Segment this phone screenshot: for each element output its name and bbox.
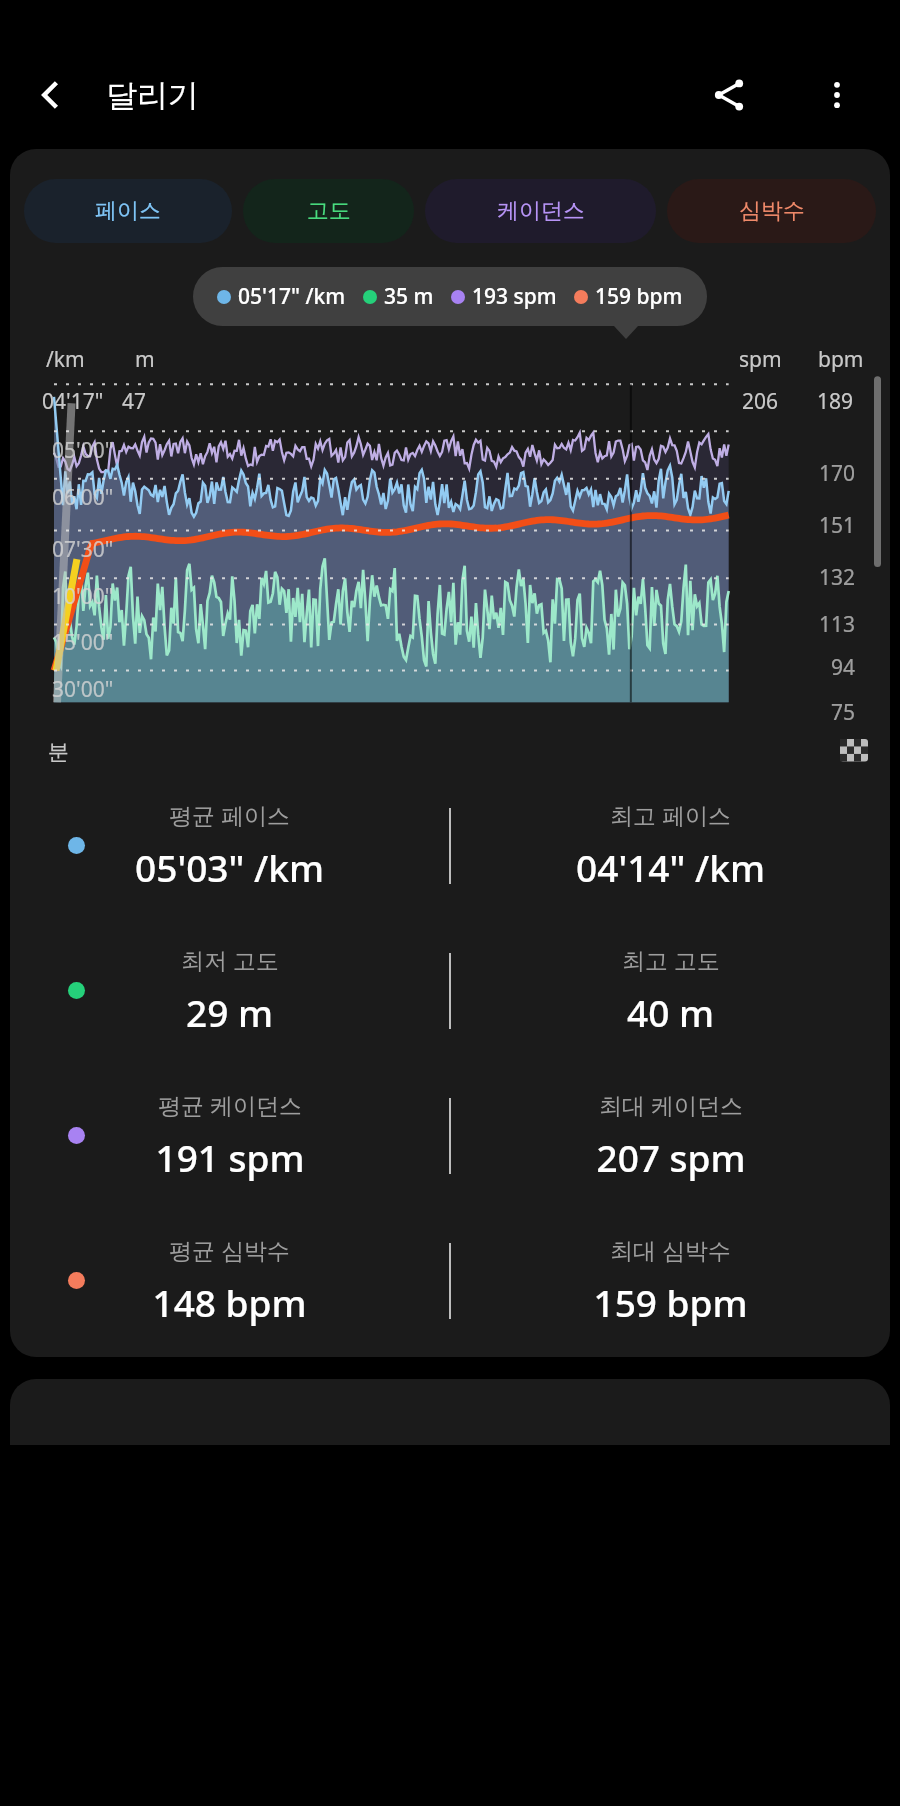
staticText: 15'00" [52,628,114,657]
staticText: 113 [819,610,856,639]
staticText: 94 [831,653,856,682]
staticText: 148 bpm [152,1277,307,1327]
button[interactable]: Share [698,64,760,126]
staticText: 분 [48,739,69,765]
staticText: 04'14" /km [576,842,765,892]
button[interactable]: More options [806,64,868,126]
staticText: 193 spm [472,282,557,311]
staticText: 10'00" [52,582,114,611]
staticText: 페이스 [95,197,161,225]
staticText: 최고 페이스 [610,799,731,830]
staticText: 고도 [307,197,351,225]
staticText: 75 [831,698,856,727]
staticText: 평균 케이던스 [158,1089,302,1120]
staticText: 132 [819,563,856,592]
staticText: 191 spm [155,1132,305,1182]
button[interactable]: 평균 케이던스 [10,1089,890,1182]
staticText: 05'00" [52,436,114,465]
staticText: spm [739,345,782,374]
staticText: 151 [819,511,856,540]
staticText: 170 [819,459,856,488]
button[interactable]: 평균 페이스 [10,799,890,892]
staticText: 04'17" [42,387,104,416]
staticText: 07'30" [52,535,114,564]
staticText: 케이던스 [497,197,585,225]
staticText: bpm [818,345,864,374]
staticText: 159 bpm [595,282,683,311]
staticText: 심박수 [739,197,805,225]
button[interactable]: 최저 고도 [10,944,890,1037]
staticText: 달리기 [106,76,199,115]
staticText: 05'17" /km [238,282,346,311]
button[interactable]: Back [22,66,80,124]
staticText: /km [46,345,85,374]
button[interactable]: 심박수 [667,179,876,243]
staticText: 30'00" [52,675,114,704]
staticText: 최대 케이던스 [599,1089,743,1120]
staticText: 최대 심박수 [610,1234,731,1265]
staticText: 최고 고도 [622,944,720,975]
staticText: m [135,345,155,374]
staticText: 평균 심박수 [169,1234,290,1265]
staticText: 35 m [384,282,434,311]
button[interactable]: 평균 심박수 [10,1234,890,1327]
button[interactable]: 페이스 [24,179,232,243]
staticText: 최저 고도 [181,944,279,975]
staticText: 159 bpm [593,1277,748,1327]
staticText: 47 [122,387,147,416]
staticText: 207 spm [596,1132,746,1182]
button[interactable]: 고도 [243,179,414,243]
staticText: 206 [742,387,779,416]
staticText: 평균 페이스 [169,799,290,830]
staticText: 29 m [186,987,273,1037]
staticText: 40 m [627,987,714,1037]
staticText: 189 [817,387,854,416]
staticText: 06'00" [52,483,114,512]
staticText: 05'03" /km [135,842,324,892]
button[interactable]: 케이던스 [425,179,656,243]
